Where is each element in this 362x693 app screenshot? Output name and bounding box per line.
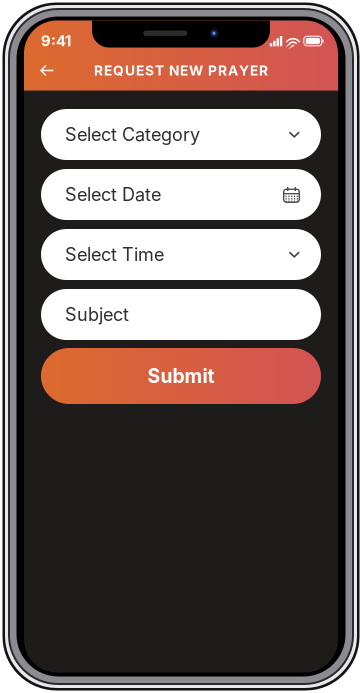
button[interactable]: Select Category: [41, 109, 321, 160]
staticText: Select Time: [65, 244, 164, 265]
staticText: 9:41: [41, 32, 71, 50]
staticText: Submit: [147, 364, 214, 388]
button[interactable]: Back: [24, 59, 78, 81]
button[interactable]: Select Time: [41, 229, 321, 280]
staticText: Select Date: [65, 184, 161, 205]
staticText: Select Category: [65, 124, 200, 145]
button[interactable]: Submit: [41, 349, 321, 404]
staticText: R E Q U E S T N E W P R A Y E R: [94, 62, 268, 79]
button[interactable]: Subject: [41, 289, 321, 340]
button[interactable]: Select Date: [41, 169, 321, 220]
staticText: Subject: [65, 304, 129, 325]
